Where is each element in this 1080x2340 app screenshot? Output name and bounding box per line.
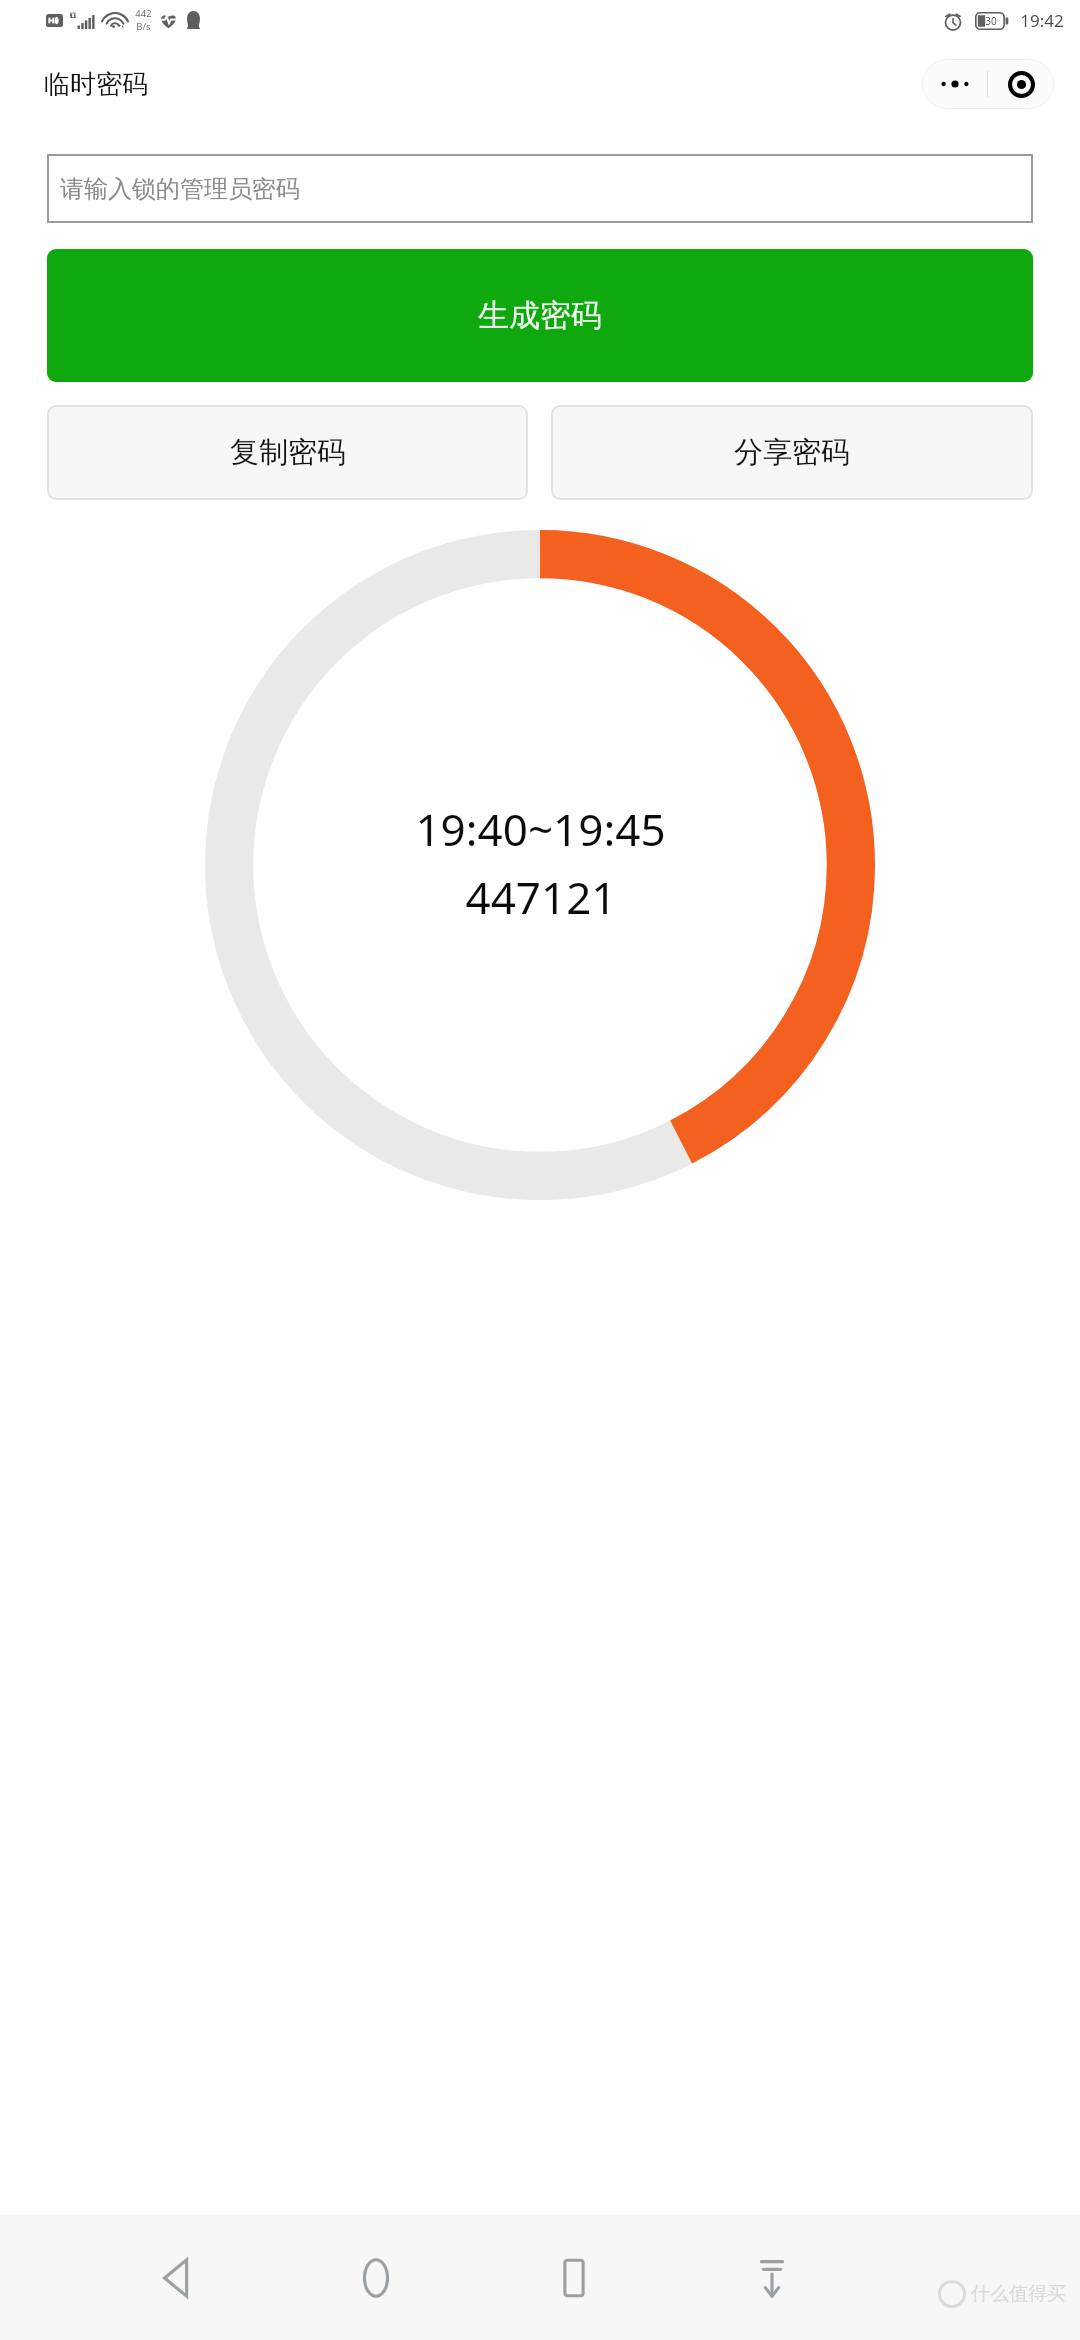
button[interactable]: 请输入锁的管理员密码 bbox=[47, 154, 1033, 223]
staticText: 19:40~19:45 bbox=[415, 799, 666, 859]
staticText: 什么值得买 bbox=[971, 2282, 1066, 2306]
button[interactable]: More bbox=[922, 59, 987, 109]
staticText: 30 bbox=[985, 14, 997, 28]
staticText: 请输入锁的管理员密码 bbox=[60, 174, 300, 204]
staticText: 分享密码 bbox=[734, 434, 850, 471]
button[interactable]: Close bbox=[988, 59, 1054, 109]
staticText: 临时密码 bbox=[44, 68, 148, 101]
button[interactable]: Home bbox=[328, 2230, 424, 2326]
button[interactable]: 分享密码 bbox=[551, 405, 1033, 500]
staticText: 19:42 bbox=[1020, 9, 1064, 32]
button[interactable]: Back bbox=[130, 2230, 226, 2326]
staticText: 447121 bbox=[465, 867, 617, 927]
staticText: B/s bbox=[136, 20, 151, 33]
button[interactable]: 生成密码 bbox=[47, 249, 1033, 382]
button[interactable]: 临时密码 bbox=[44, 68, 148, 101]
staticText: 生成密码 bbox=[478, 296, 602, 335]
button[interactable]: Hide keyboard bbox=[724, 2230, 820, 2326]
staticText: 复制密码 bbox=[230, 434, 346, 471]
button[interactable]: 复制密码 bbox=[47, 405, 528, 500]
button[interactable]: Recents bbox=[526, 2230, 622, 2326]
staticText: 442 bbox=[135, 7, 152, 20]
